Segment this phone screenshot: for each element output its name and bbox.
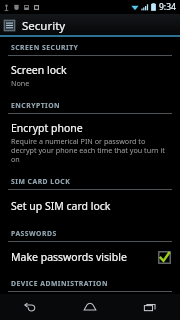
button[interactable]: Screen lock: [0, 56, 180, 94]
staticText: Set up SIM card lock: [11, 199, 111, 213]
button[interactable]: Navigate up: [0, 14, 180, 37]
staticText: None: [11, 78, 30, 88]
staticText: DEVICE ADMINISTRATION: [11, 279, 109, 288]
button[interactable]: Make passwords visible: [0, 242, 180, 272]
staticText: Make passwords visible: [11, 250, 127, 264]
staticText: PASSWORDS: [11, 229, 57, 238]
button[interactable]: Recent apps: [120, 294, 180, 320]
button[interactable]: Encrypt phone: [0, 114, 180, 170]
staticText: Screen lock: [11, 63, 67, 77]
button[interactable]: Back: [0, 294, 60, 320]
staticText: Require a numerical PIN or password to d…: [11, 136, 171, 164]
staticText: ENCRYPTION: [11, 101, 61, 110]
staticText: Security: [22, 18, 66, 34]
staticText: 9:34: [159, 1, 176, 13]
button[interactable]: Home: [60, 294, 120, 320]
staticText: SIM CARD LOCK: [11, 177, 71, 186]
staticText: Encrypt phone: [11, 121, 83, 135]
staticText: SCREEN SECURITY: [11, 43, 79, 52]
button[interactable]: Set up SIM card lock: [0, 190, 180, 222]
